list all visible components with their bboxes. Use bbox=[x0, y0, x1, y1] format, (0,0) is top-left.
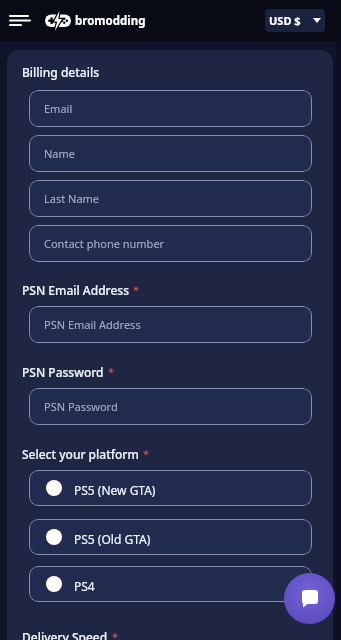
staticText: PS5 (New GTA) bbox=[74, 482, 156, 498]
staticText: * bbox=[108, 364, 115, 379]
button[interactable] bbox=[10, 10, 32, 32]
staticText: PSN Password bbox=[44, 399, 118, 414]
staticText: bromodding bbox=[75, 13, 146, 29]
staticText: Billing details bbox=[22, 64, 99, 80]
button[interactable]: USD $ bbox=[265, 9, 325, 32]
staticText: PS5 (Old GTA) bbox=[74, 531, 151, 547]
staticText: Name bbox=[44, 146, 76, 161]
button[interactable]: bromodding bbox=[45, 11, 146, 31]
staticText: USD $ bbox=[269, 13, 301, 28]
staticText: * bbox=[112, 629, 119, 640]
button[interactable]: PS5 (New GTA) bbox=[29, 470, 312, 506]
staticText: * bbox=[143, 446, 150, 461]
staticText: Last Name bbox=[44, 191, 100, 206]
staticText: * bbox=[133, 282, 140, 297]
staticText: PS4 bbox=[74, 578, 95, 594]
button[interactable]: PS4 bbox=[29, 566, 312, 602]
button[interactable]: PSN Email Address bbox=[29, 306, 312, 343]
button[interactable]: PS5 (Old GTA) bbox=[29, 519, 312, 555]
staticText: PSN Email Address bbox=[44, 317, 141, 332]
staticText: Delivery Speed bbox=[22, 629, 108, 640]
staticText: Contact phone number bbox=[44, 236, 165, 251]
staticText: PSN Password bbox=[22, 364, 104, 380]
button[interactable]: Contact phone number bbox=[29, 225, 312, 262]
staticText: PSN Email Address bbox=[22, 282, 129, 298]
button[interactable]: Email bbox=[29, 90, 312, 127]
staticText: Select your platform bbox=[22, 446, 139, 462]
button[interactable]: PSN Password bbox=[29, 388, 312, 425]
button[interactable]: Name bbox=[29, 135, 312, 172]
button[interactable] bbox=[284, 573, 335, 624]
button[interactable]: Last Name bbox=[29, 180, 312, 217]
staticText: Email bbox=[44, 101, 73, 116]
